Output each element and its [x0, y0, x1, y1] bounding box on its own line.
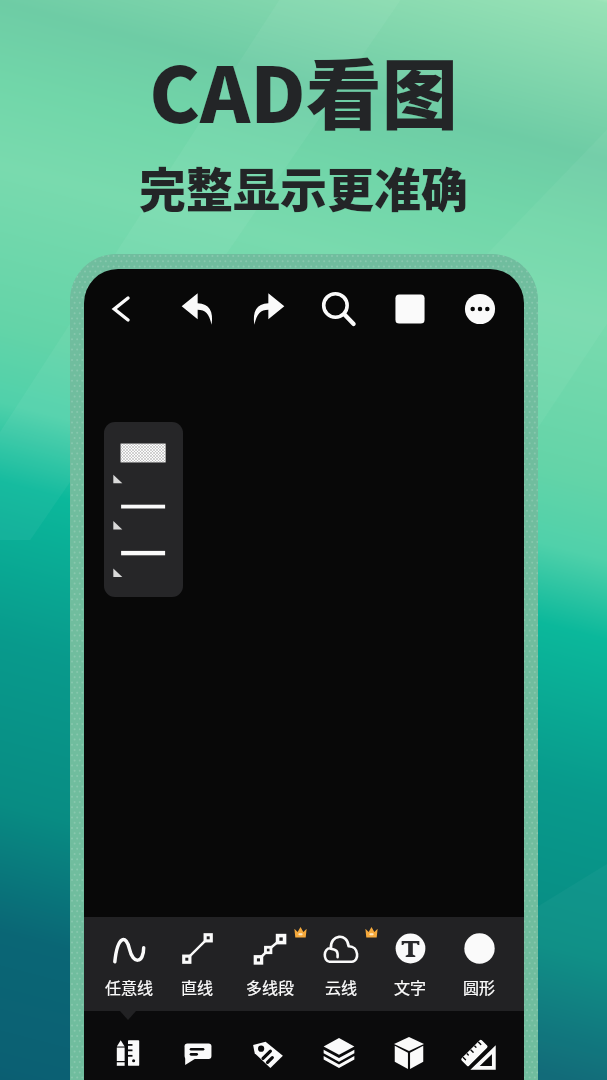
button[interactable]: Undo: [175, 286, 221, 332]
staticText: 直线: [181, 975, 214, 998]
button[interactable]: Measure: [452, 1027, 504, 1079]
staticText: 完整显示更准确: [0, 152, 607, 220]
button[interactable]: Layers: [313, 1027, 365, 1079]
staticText: 多线段: [246, 975, 295, 998]
button[interactable]: Stop: [387, 286, 433, 332]
button[interactable]: Back: [98, 286, 144, 332]
button[interactable]: 任意线: [96, 917, 162, 982]
staticText: 任意线: [105, 975, 154, 998]
button[interactable]: 多线段: [237, 917, 303, 982]
staticText: CAD看图: [0, 35, 607, 145]
button[interactable]: Redo: [245, 286, 291, 332]
staticText: 文字: [394, 975, 427, 998]
staticText: 圆形: [463, 975, 496, 998]
button[interactable]: 圆形: [446, 917, 512, 982]
button[interactable]: Search: [316, 286, 362, 332]
button[interactable]: 直线: [164, 917, 230, 982]
button[interactable]: Layer list: [104, 422, 183, 597]
button[interactable]: Draw tools: [102, 1027, 154, 1079]
button[interactable]: Comments: [172, 1027, 224, 1079]
staticText: 云线: [325, 975, 358, 998]
button[interactable]: 文字: [377, 917, 443, 982]
button[interactable]: 云线: [308, 917, 374, 982]
button[interactable]: More options: [457, 286, 503, 332]
button[interactable]: 3D view: [383, 1027, 435, 1079]
button[interactable]: Tags: [242, 1027, 294, 1079]
